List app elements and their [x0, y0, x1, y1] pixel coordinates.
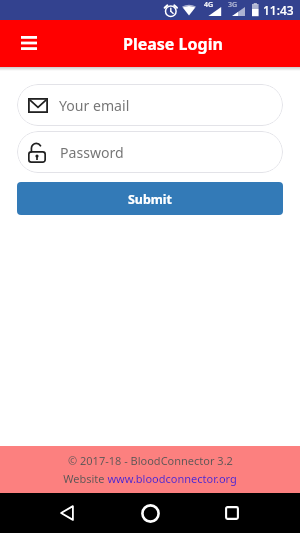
button[interactable]: Your email	[17, 84, 283, 126]
staticText: © 2017-18 - BloodConnector 3.2	[68, 453, 233, 468]
button[interactable]: Submit	[17, 182, 283, 215]
staticText: 4G	[204, 0, 214, 10]
button[interactable]: Home	[130, 493, 170, 533]
staticText: 3G	[228, 0, 238, 10]
button[interactable]: Password	[17, 131, 283, 173]
button[interactable]: Back	[47, 493, 87, 533]
staticText: Password	[60, 143, 124, 162]
staticText: Your email	[59, 96, 130, 115]
staticText: Please Login	[123, 33, 223, 55]
button[interactable]: Website www.bloodconnector.org	[63, 471, 237, 486]
staticText: Submit	[128, 191, 172, 208]
staticText: 11:43	[263, 2, 294, 18]
button[interactable]: Open navigation menu	[7, 21, 51, 65]
button[interactable]: Recent apps	[212, 493, 252, 533]
